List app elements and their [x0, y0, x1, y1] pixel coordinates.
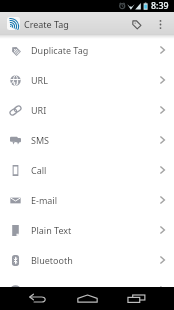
staticText: Bluetooth [31, 254, 73, 266]
button[interactable]: E-mail [0, 185, 174, 215]
staticText: E-mail [31, 194, 58, 206]
button[interactable]: Duplicate Tag [0, 35, 174, 65]
button[interactable]: Write tag [125, 13, 147, 35]
button[interactable]: URL [0, 65, 174, 95]
staticText: Duplicate Tag [31, 44, 89, 56]
button[interactable]: Recent apps [127, 294, 146, 304]
staticText: URI [31, 104, 47, 116]
button[interactable]: Back [29, 294, 46, 304]
staticText: Create Tag [24, 18, 69, 30]
button[interactable]: URI [0, 95, 174, 125]
staticText: Call [31, 164, 47, 176]
button[interactable]: Plain Text [0, 215, 174, 245]
staticText: 8:39 [151, 0, 169, 12]
button[interactable]: SMS [0, 125, 174, 155]
button[interactable]: More options [150, 14, 170, 34]
button[interactable]: Home [77, 294, 98, 304]
staticText: URL [31, 74, 48, 86]
button[interactable]: Bluetooth [0, 245, 174, 275]
staticText: SMS [31, 134, 50, 146]
button[interactable]: Call [0, 155, 174, 185]
button[interactable]: WiFi [0, 275, 174, 287]
staticText: Plain Text [31, 224, 72, 236]
